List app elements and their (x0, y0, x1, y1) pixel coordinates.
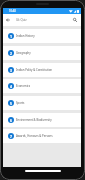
button[interactable]: 3 (3, 63, 81, 77)
staticText: Indian Polity & Constitution (16, 68, 53, 72)
staticText: Economics (16, 84, 31, 88)
button[interactable]: 2 (3, 46, 81, 60)
staticText: 5 (10, 101, 12, 106)
staticText: 2 (10, 51, 12, 56)
staticText: Awards, Honours & Persons (16, 134, 53, 138)
button[interactable]: 5 (3, 96, 81, 110)
button[interactable]: 7 (3, 129, 81, 143)
button[interactable]: Back (3, 14, 13, 26)
button[interactable]: 6 (3, 113, 81, 127)
staticText: Geography (16, 51, 31, 55)
staticText: 6 (10, 118, 12, 123)
staticText: 10:40 (9, 9, 16, 13)
staticText: Environment & Biodiversity (16, 118, 52, 122)
button[interactable]: 1 (3, 29, 81, 43)
staticText: 3 (10, 68, 12, 73)
button[interactable]: 4 (3, 79, 81, 93)
staticText: 1 (10, 34, 12, 39)
staticText: Gk Quiz (16, 18, 27, 22)
button[interactable]: Search (70, 14, 80, 26)
staticText: Sports (16, 101, 25, 105)
staticText: 4 (10, 84, 12, 89)
staticText: 7 (10, 134, 12, 139)
staticText: Indian History (16, 34, 35, 38)
